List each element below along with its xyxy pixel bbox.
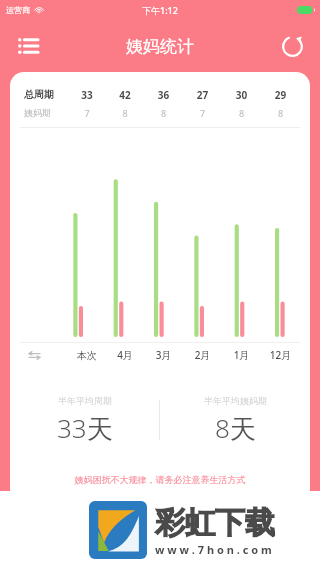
staticText: 半年平均周期: [58, 395, 112, 406]
staticText: 33: [68, 88, 106, 102]
staticText: 彩虹下载: [155, 504, 275, 542]
staticText: 下午1:12: [142, 4, 178, 16]
staticText: 33天: [57, 410, 113, 446]
staticText: 姨妈统计: [126, 36, 194, 57]
staticText: 7: [68, 107, 106, 119]
staticText: 3月: [144, 348, 183, 362]
staticText: 7: [183, 107, 222, 119]
button[interactable]: Refresh: [274, 28, 310, 64]
staticText: 姨妈困扰不大规律，请务必注意养生活方式: [10, 474, 310, 485]
staticText: 4月: [106, 348, 144, 362]
staticText: w w w . 7 h o n . c o m: [155, 542, 272, 557]
staticText: 8: [106, 107, 144, 119]
staticText: 8: [222, 107, 261, 119]
staticText: 36: [144, 88, 183, 102]
staticText: 总周期: [24, 88, 68, 101]
staticText: 27: [183, 88, 222, 102]
staticText: 29: [261, 88, 300, 102]
button[interactable]: 半年平均周期: [10, 395, 159, 446]
button[interactable]: Menu: [10, 28, 46, 64]
staticText: 30: [222, 88, 261, 102]
staticText: 8: [261, 107, 300, 119]
staticText: 8: [144, 107, 183, 119]
staticText: 姨妈期: [24, 107, 68, 118]
staticText: 42: [106, 88, 144, 102]
staticText: 半年平均姨妈期: [204, 395, 267, 406]
button[interactable]: 半年平均姨妈期: [160, 395, 310, 446]
staticText: 本次: [68, 349, 106, 362]
staticText: 8天: [215, 410, 256, 446]
staticText: 运营商: [6, 5, 30, 15]
staticText: 2月: [183, 348, 222, 362]
staticText: 12月: [261, 348, 300, 362]
staticText: 1月: [222, 348, 261, 362]
